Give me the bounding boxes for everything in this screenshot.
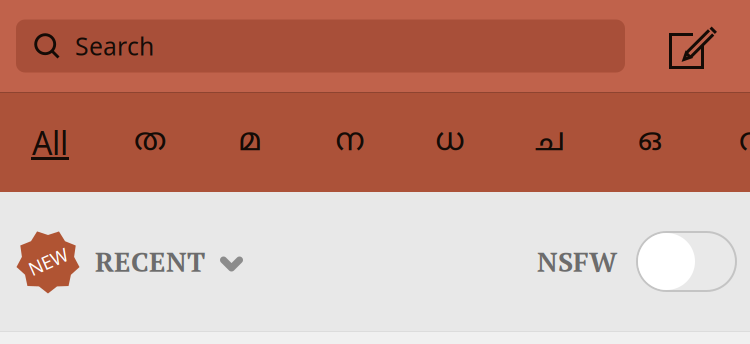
button[interactable]: Compose [654,15,732,77]
staticText: All [32,121,68,164]
staticText: NEW [27,249,68,274]
button[interactable]: ധ [400,93,500,192]
button[interactable]: ച [500,93,600,192]
staticText: Search [75,29,154,63]
button[interactable]: NSFW [537,232,736,291]
button[interactable]: ത [100,93,200,192]
button[interactable]: റ [700,93,750,192]
staticText: ച [535,122,565,162]
staticText: റ [739,122,750,162]
button[interactable]: All [0,93,100,192]
staticText: ഒ [638,122,662,162]
button[interactable]: RECENT [95,243,243,280]
staticText: RECENT [95,243,205,280]
button[interactable]: Search [16,19,625,72]
staticText: ന [335,122,364,162]
staticText: NSFW [537,243,617,280]
staticText: ധ [435,122,464,162]
button[interactable]: മ [200,93,300,192]
button[interactable]: ഒ [600,93,700,192]
button[interactable]: ന [300,93,400,192]
staticText: ത [134,122,166,162]
staticText: മ [238,122,261,162]
